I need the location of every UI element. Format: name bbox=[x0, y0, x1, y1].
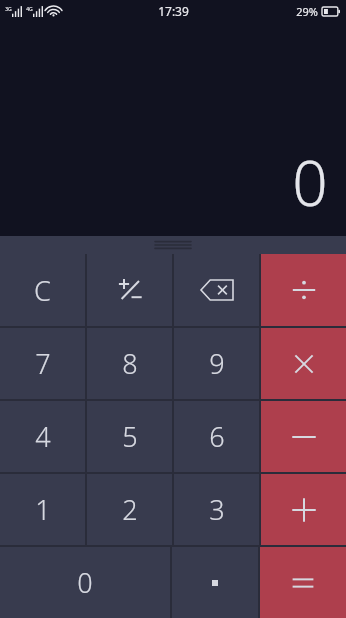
button[interactable]: 4 bbox=[0, 401, 85, 472]
staticText: 17:39 bbox=[158, 3, 189, 19]
staticText: 8 bbox=[122, 345, 138, 382]
button[interactable]: 3 bbox=[174, 474, 259, 545]
staticText: 2 bbox=[122, 491, 138, 528]
button[interactable]: 1 bbox=[0, 474, 85, 545]
button[interactable]: 8 bbox=[87, 328, 172, 399]
button[interactable]: Toggle sign bbox=[87, 254, 172, 326]
staticText: 0 bbox=[77, 564, 93, 601]
button[interactable]: Equals bbox=[260, 547, 346, 618]
button[interactable]: 6 bbox=[174, 401, 259, 472]
staticText: 29% bbox=[296, 4, 318, 19]
staticText: C bbox=[34, 272, 51, 309]
staticText: 3G bbox=[5, 6, 12, 13]
staticText: 7 bbox=[35, 345, 51, 382]
button[interactable]: 0 bbox=[0, 547, 170, 618]
button[interactable]: Minus bbox=[261, 401, 346, 472]
button[interactable]: 9 bbox=[174, 328, 259, 399]
staticText: 0 bbox=[292, 140, 328, 224]
staticText: 1 bbox=[35, 491, 51, 528]
staticText: 4 bbox=[35, 418, 51, 455]
button[interactable]: 7 bbox=[0, 328, 85, 399]
staticText: 3 bbox=[209, 491, 225, 528]
staticText: 9 bbox=[209, 345, 225, 382]
button[interactable]: Multiply bbox=[261, 328, 346, 399]
staticText: 5 bbox=[122, 418, 138, 455]
staticText: 4G bbox=[26, 6, 33, 13]
button[interactable]: Backspace bbox=[174, 254, 259, 326]
button[interactable]: 2 bbox=[87, 474, 172, 545]
button[interactable]: Plus bbox=[261, 474, 346, 545]
button[interactable]: C bbox=[0, 254, 85, 326]
button[interactable]: 5 bbox=[87, 401, 172, 472]
staticText: 6 bbox=[209, 418, 225, 455]
button[interactable]: Decimal point bbox=[172, 547, 258, 618]
button[interactable]: Divide bbox=[261, 254, 346, 326]
